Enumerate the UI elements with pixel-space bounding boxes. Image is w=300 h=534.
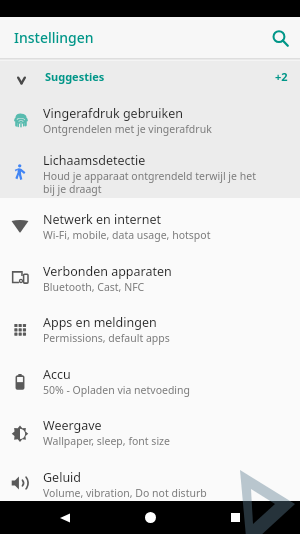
staticText: Suggesties	[45, 69, 280, 84]
button[interactable]: Geluid	[0, 456, 300, 508]
button[interactable]: Lichaamsdetectie	[0, 147, 300, 198]
staticText: Instellingen	[14, 28, 94, 47]
button[interactable]: Search	[260, 18, 300, 58]
staticText: Permissions, default apps	[43, 331, 170, 345]
button[interactable]: Verbonden apparaten	[0, 250, 300, 302]
staticText: 50% - Opladen via netvoeding	[43, 383, 191, 397]
staticText: Geluid	[43, 469, 82, 486]
button[interactable]: Recents	[215, 501, 255, 534]
staticText: Apps en meldingen	[43, 314, 157, 331]
button[interactable]: Suggesties	[0, 61, 300, 100]
button[interactable]: Vingerafdruk gebruiken	[0, 100, 300, 147]
staticText: Ontgrendelen met je vingerafdruk	[43, 122, 212, 136]
staticText: Vingerafdruk gebruiken	[43, 105, 183, 122]
staticText: Accu	[43, 366, 71, 383]
staticText: Lichaamsdetectie	[43, 152, 146, 169]
button[interactable]: Apps en meldingen	[0, 302, 300, 353]
button[interactable]: Accu	[0, 353, 300, 405]
staticText: Wi-Fi, mobile, data usage, hotspot	[43, 228, 211, 242]
staticText: +2	[275, 69, 288, 84]
button[interactable]: Netwerk en internet	[0, 198, 300, 250]
staticText: Wallpaper, sleep, font size	[43, 434, 170, 448]
button[interactable]: Back	[45, 501, 85, 534]
staticText: Netwerk en internet	[43, 211, 162, 228]
staticText: Volume, vibration, Do not disturb	[43, 486, 207, 500]
staticText: Houd je apparaat ontgrendeld terwijl je …	[43, 169, 256, 196]
button[interactable]: Home	[130, 501, 170, 534]
staticText: Weergave	[43, 417, 102, 434]
staticText: Verbonden apparaten	[43, 263, 172, 280]
button[interactable]: Weergave	[0, 405, 300, 456]
staticText: Bluetooth, Cast, NFC	[43, 280, 145, 294]
